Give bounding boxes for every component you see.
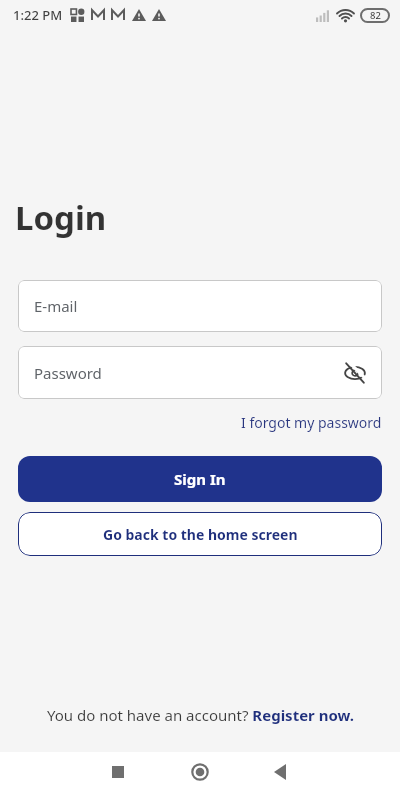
staticText: 82	[370, 9, 381, 22]
button[interactable]	[344, 362, 366, 384]
staticText: Sign In	[174, 469, 226, 489]
staticText: Login	[15, 195, 107, 240]
staticText: You do not have an account? Register now…	[47, 705, 354, 725]
button[interactable]: Sign In	[18, 456, 382, 502]
staticText: Password	[34, 363, 102, 383]
button[interactable]	[274, 764, 286, 780]
staticText: Go back to the home screen	[103, 525, 298, 544]
staticText: E-mail	[34, 296, 78, 316]
staticText: 1:22 PM	[13, 6, 63, 24]
button[interactable]: I forgot my password	[241, 413, 382, 432]
button[interactable]: You do not have an account? Register now…	[47, 705, 354, 725]
button[interactable]: Password	[18, 346, 382, 399]
button[interactable]: Go back to the home screen	[18, 512, 382, 556]
button[interactable]: E-mail	[18, 280, 382, 332]
button[interactable]	[190, 762, 210, 782]
